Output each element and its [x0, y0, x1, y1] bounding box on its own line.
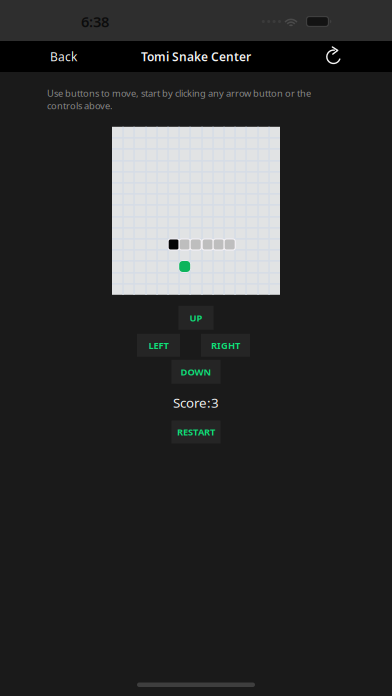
- button[interactable]: LEFT: [137, 334, 180, 357]
- staticText: Use buttons to move, start by clicking a…: [47, 87, 311, 112]
- staticText: Back: [50, 48, 77, 64]
- button[interactable]: RIGHT: [201, 334, 250, 357]
- button[interactable]: DOWN: [171, 360, 220, 384]
- staticText: Tomi Snake Center: [141, 48, 251, 64]
- staticText: RESTART: [177, 426, 215, 438]
- staticText: DOWN: [180, 366, 211, 378]
- button[interactable]: Back: [0, 41, 93, 72]
- button[interactable]: Refresh: [308, 41, 392, 72]
- staticText: LEFT: [148, 339, 168, 351]
- staticText: 6:38: [81, 12, 109, 31]
- button[interactable]: UP: [178, 306, 213, 330]
- staticText: UP: [189, 312, 202, 324]
- button[interactable]: RESTART: [171, 420, 220, 443]
- staticText: Score:3: [173, 394, 219, 411]
- staticText: RIGHT: [211, 339, 240, 351]
